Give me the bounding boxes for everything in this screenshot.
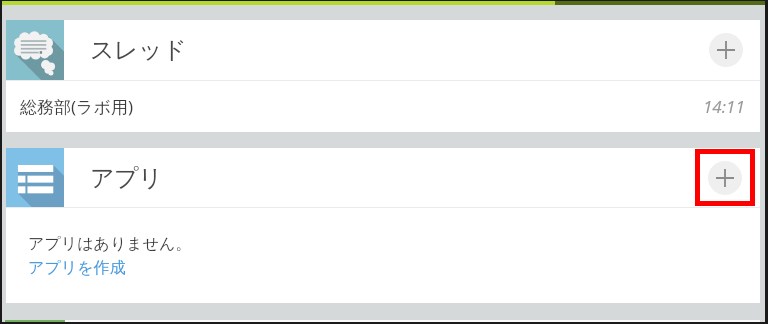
- staticText: 14:11: [703, 95, 745, 118]
- staticText: スレッド: [90, 35, 186, 65]
- staticText: 総務部(ラボ用): [20, 95, 133, 118]
- staticText: アプリ: [90, 163, 162, 193]
- staticText: アプリはありません。: [28, 234, 192, 254]
- button[interactable]: アプリを作成: [28, 258, 126, 278]
- button[interactable]: 横スクロールバー: [5, 320, 760, 322]
- button[interactable]: スレッド: [6, 20, 760, 80]
- button[interactable]: アプリ: [6, 148, 760, 207]
- button[interactable]: アプリを追加: [695, 149, 755, 206]
- button[interactable]: 総務部(ラボ用): [6, 81, 760, 132]
- button[interactable]: スレッドを追加: [698, 22, 754, 78]
